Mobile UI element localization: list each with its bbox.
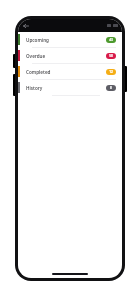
staticText: Completed xyxy=(26,69,51,75)
staticText: 58 xyxy=(106,54,116,58)
staticText: 12 xyxy=(106,70,116,74)
button[interactable]: History xyxy=(18,80,122,95)
staticText: 43 xyxy=(106,38,116,42)
button[interactable]: Overdue xyxy=(18,48,122,63)
staticText: Upcoming xyxy=(26,37,49,43)
button[interactable]: Completed xyxy=(18,64,122,79)
button[interactable]: Upcoming xyxy=(18,32,122,47)
staticText: History xyxy=(26,85,43,91)
staticText: 8 xyxy=(106,86,116,90)
button[interactable]: Back xyxy=(21,21,31,31)
staticText: Overdue xyxy=(26,53,46,59)
